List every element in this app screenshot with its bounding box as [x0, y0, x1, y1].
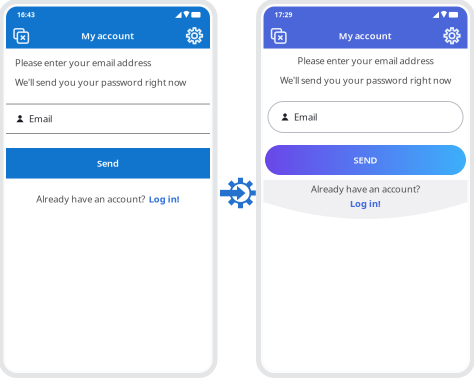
staticText: Log in! — [350, 197, 381, 210]
button[interactable]: Settings — [180, 23, 208, 48]
staticText: My account — [81, 30, 134, 42]
button[interactable]: SEND — [265, 145, 466, 175]
staticText: My account — [339, 30, 392, 42]
button[interactable]: Close — [264, 23, 292, 48]
staticText: We'll send you your password right now — [280, 74, 451, 86]
staticText: SEND — [353, 154, 377, 166]
button[interactable]: Email — [268, 101, 463, 132]
staticText: 16:43 — [17, 10, 35, 19]
button[interactable]: Already have an account? — [6, 190, 210, 208]
button[interactable]: Settings — [438, 23, 466, 48]
button[interactable]: Send — [6, 148, 210, 178]
staticText: Email — [294, 111, 317, 123]
staticText: Please enter your email address — [297, 55, 433, 67]
staticText: 17:29 — [274, 10, 292, 19]
button[interactable]: Email — [6, 103, 210, 134]
staticText: Email — [29, 113, 52, 125]
staticText: We'll send you your password right now — [15, 76, 186, 88]
staticText: Already have an account? — [36, 193, 145, 205]
staticText: Send — [97, 157, 119, 169]
button[interactable]: Close — [7, 23, 35, 48]
staticText: Log in! — [149, 193, 180, 205]
button[interactable]: Already have an account? — [263, 180, 467, 220]
staticText: Already have an account? — [311, 183, 420, 195]
staticText: Please enter your email address — [15, 57, 151, 69]
